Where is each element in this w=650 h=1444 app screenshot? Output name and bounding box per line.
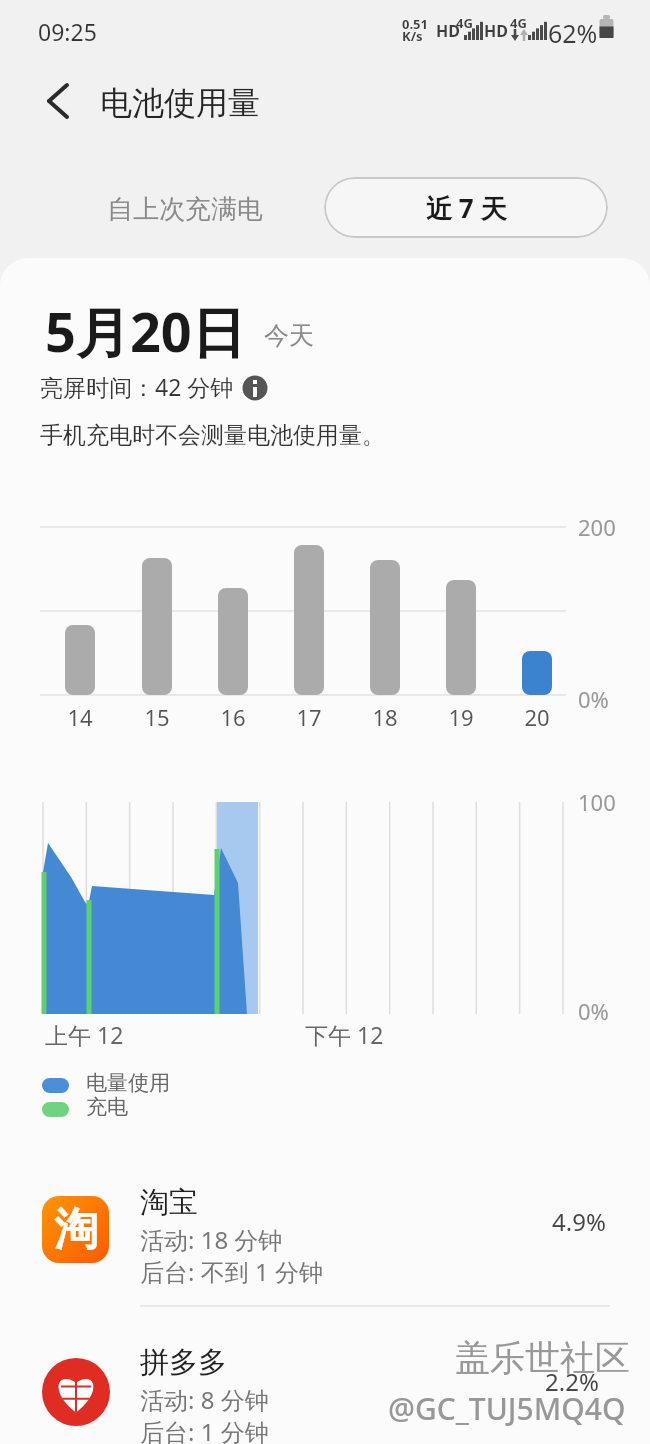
staticText: 活动: 8 分钟 — [140, 1383, 269, 1416]
staticText: 手机充电时不会测量电池使用量。 — [40, 421, 385, 450]
staticText: 拼多多 — [140, 1344, 227, 1381]
staticText: 后台: 1 分钟 — [140, 1415, 269, 1444]
staticText: 自上次充满电 — [55, 193, 315, 226]
button[interactable]: 近 7 天 — [324, 177, 608, 238]
staticText: 盖乐世社区 — [455, 1336, 630, 1380]
staticText: 17 — [279, 702, 339, 732]
staticText: 15 — [127, 702, 187, 732]
staticText: 200 — [578, 512, 616, 542]
staticText: 电池使用量 — [100, 83, 260, 123]
staticText: 淘宝 — [140, 1184, 198, 1221]
staticText: 4G — [510, 14, 527, 32]
staticText: 09:25 — [38, 16, 97, 47]
staticText: 20 — [507, 702, 567, 732]
staticText: 上午 12 — [45, 1019, 124, 1050]
staticText: 充电 — [86, 1094, 128, 1120]
staticText: @GC_TUJ5MQ4Q — [388, 1388, 626, 1429]
staticText: HD — [436, 20, 460, 42]
staticText: 4.9% — [552, 1205, 606, 1238]
staticText: 100 — [578, 787, 616, 817]
staticText: 18 — [355, 702, 415, 732]
button[interactable] — [55, 177, 315, 238]
staticText: 5月20日 — [45, 294, 246, 368]
staticText: 0% — [578, 684, 609, 714]
staticText: 亮屏时间：42 分钟 — [40, 371, 234, 402]
staticText: 下午 12 — [305, 1019, 384, 1050]
staticText: 今天 — [264, 320, 314, 351]
staticText: 近 7 天 — [426, 190, 507, 226]
staticText: 19 — [431, 702, 491, 732]
staticText: 电量使用 — [86, 1070, 170, 1096]
button[interactable]: 拼多多 — [0, 1340, 650, 1444]
staticText: 淘 — [54, 1202, 98, 1257]
staticText: HD — [484, 20, 508, 42]
staticText: 16 — [203, 702, 263, 732]
staticText: 62% — [548, 16, 598, 50]
staticText: K/s — [402, 27, 423, 45]
staticText: 0.51 — [402, 15, 428, 33]
staticText: 后台: 不到 1 分钟 — [140, 1255, 323, 1288]
button[interactable]: 淘 — [0, 1180, 650, 1306]
staticText: 2.2% — [545, 1365, 599, 1398]
staticText: 活动: 18 分钟 — [140, 1223, 283, 1256]
staticText: 0% — [578, 996, 609, 1026]
staticText: 4G — [456, 14, 473, 32]
staticText: 14 — [50, 702, 110, 732]
